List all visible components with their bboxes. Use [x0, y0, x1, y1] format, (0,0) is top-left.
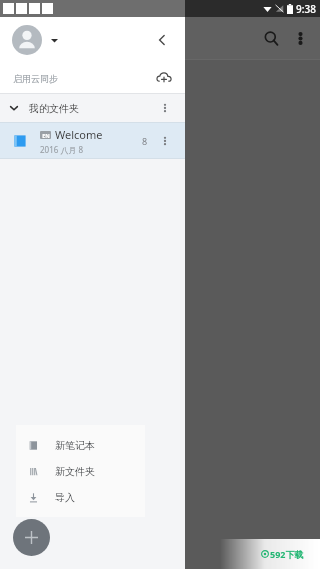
button[interactable]: EN — [0, 123, 185, 158]
button[interactable]: More options — [286, 24, 314, 52]
staticText: 2016 八月 8 — [40, 144, 84, 155]
staticText: 9:38 — [296, 2, 316, 16]
button[interactable]: Close drawer — [147, 25, 177, 55]
button[interactable]: Create — [13, 519, 50, 556]
button[interactable]: Folder options — [155, 98, 175, 118]
staticText: 启用云同步 — [13, 73, 58, 84]
staticText: 592下载 — [270, 548, 304, 560]
button[interactable]: 新文件夹 — [16, 458, 145, 484]
staticText: 导入 — [55, 491, 75, 504]
staticText: 新笔记本 — [55, 439, 95, 452]
button[interactable]: 启用云同步 — [0, 63, 185, 93]
button[interactable]: 导入 — [16, 484, 145, 510]
staticText: 我的文件夹 — [29, 102, 79, 115]
staticText: 新文件夹 — [55, 465, 95, 478]
staticText: 8 — [142, 135, 148, 147]
button[interactable]: Switch account — [47, 33, 61, 47]
button[interactable]: 我的文件夹 — [0, 94, 185, 122]
button[interactable]: Account — [12, 25, 42, 55]
button[interactable]: 新笔记本 — [16, 432, 145, 458]
staticText: EN — [42, 132, 50, 139]
staticText: Welcome — [55, 127, 103, 142]
button[interactable]: Search — [256, 23, 286, 53]
button[interactable]: Notebook options — [155, 131, 175, 151]
